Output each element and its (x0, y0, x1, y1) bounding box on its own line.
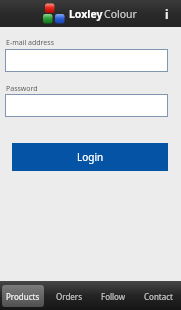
button[interactable]: Login (12, 143, 168, 171)
staticText: Orders (56, 291, 82, 302)
staticText: i (165, 6, 169, 22)
staticText: Login (77, 150, 104, 164)
staticText: E-mail address (6, 38, 54, 48)
button[interactable] (5, 94, 168, 117)
staticText: Products (6, 291, 40, 302)
button[interactable] (5, 49, 168, 72)
button[interactable]: Follow (93, 285, 134, 307)
staticText: Contact (144, 291, 173, 302)
button[interactable]: Orders (48, 285, 89, 307)
button[interactable]: i (154, 0, 181, 27)
button[interactable]: Contact (138, 285, 179, 307)
staticText: Colour (104, 7, 137, 21)
staticText: Follow (101, 291, 126, 302)
staticText: Loxley (69, 7, 103, 21)
button[interactable]: Products (2, 285, 44, 307)
staticText: Password (6, 84, 38, 94)
